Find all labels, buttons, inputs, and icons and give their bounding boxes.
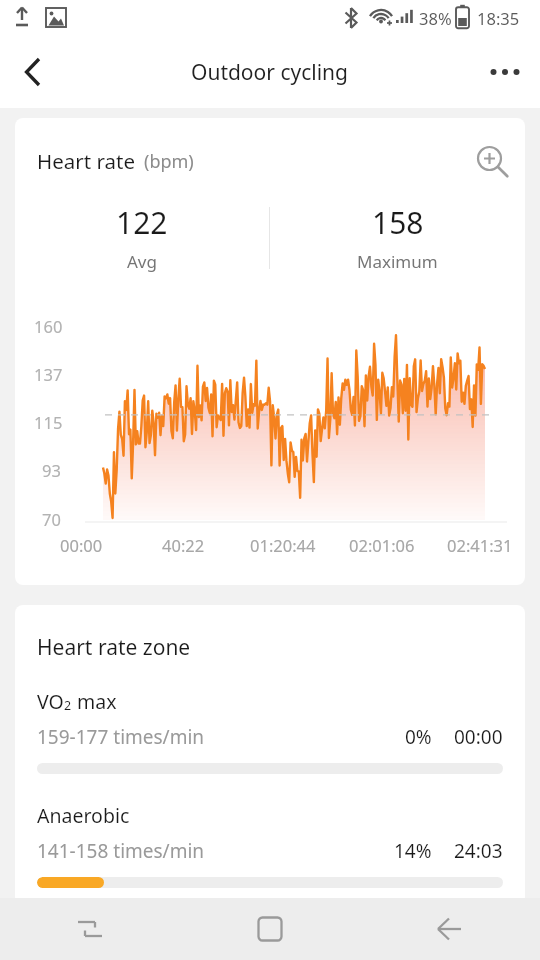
staticText: Heart rate	[37, 147, 135, 175]
staticText: 115	[34, 411, 63, 433]
staticText: 141-158 times/min	[37, 838, 205, 864]
staticText: 122	[116, 202, 168, 243]
staticText: 158	[372, 202, 424, 243]
staticText: 14%	[394, 838, 432, 864]
button[interactable]: Back	[6, 45, 60, 99]
staticText: 18:35	[477, 7, 520, 29]
staticText: 38%	[419, 7, 452, 29]
button[interactable]: Back	[360, 898, 540, 960]
staticText: max	[72, 688, 117, 715]
staticText: 00:00	[454, 724, 503, 750]
staticText: (bpm)	[144, 149, 194, 174]
button[interactable]: Zoom in chart	[471, 140, 513, 182]
button[interactable]: VO	[37, 688, 503, 774]
staticText: VO	[37, 688, 64, 715]
staticText: Outdoor cycling	[191, 58, 349, 87]
staticText: 24:03	[454, 838, 503, 864]
staticText: 160	[34, 315, 63, 337]
staticText: 93	[42, 459, 61, 481]
staticText: 00:00	[60, 534, 103, 556]
button[interactable]: More options	[478, 45, 532, 99]
staticText: 01:20:44	[250, 534, 316, 556]
staticText: 0%	[405, 724, 432, 750]
staticText: 70	[42, 508, 61, 530]
staticText: 02:01:06	[349, 534, 415, 556]
staticText: 2	[64, 697, 72, 714]
staticText: Avg	[127, 250, 157, 273]
staticText: 02:41:31	[447, 534, 513, 556]
staticText: Maximum	[357, 250, 438, 273]
staticText: 40:22	[162, 534, 205, 556]
button[interactable]: Home	[180, 898, 360, 960]
button[interactable]: Anaerobic	[37, 802, 503, 888]
staticText: Anaerobic	[37, 802, 130, 829]
button[interactable]: Recent apps	[0, 898, 180, 960]
staticText: Heart rate zone	[37, 633, 191, 662]
staticText: 137	[34, 363, 63, 385]
staticText: 159-177 times/min	[37, 724, 205, 750]
